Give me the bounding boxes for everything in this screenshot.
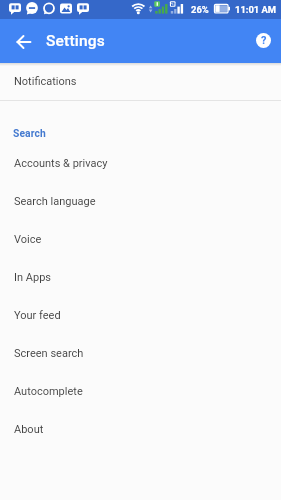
staticText: In Apps <box>14 271 52 284</box>
button[interactable]: Screen search <box>0 334 281 372</box>
button[interactable]: Notifications <box>0 63 281 100</box>
button[interactable]: In Apps <box>0 258 281 296</box>
staticText: Notifications <box>14 75 77 88</box>
staticText: 11:01 AM <box>235 4 277 15</box>
staticText: Your feed <box>14 309 61 322</box>
staticText: Autocomplete <box>14 385 83 398</box>
staticText: Settings <box>46 32 105 50</box>
button[interactable] <box>11 29 36 54</box>
button[interactable]: Voice <box>0 220 281 258</box>
staticText: 26% <box>191 4 209 15</box>
staticText: Search language <box>14 195 96 208</box>
button[interactable]: About <box>0 410 281 448</box>
button[interactable]: Accounts & privacy <box>0 144 281 182</box>
button[interactable]: ? <box>256 33 271 48</box>
staticText: Voice <box>14 233 42 246</box>
staticText: Screen search <box>14 347 84 360</box>
staticText: Search <box>13 127 46 139</box>
staticText: About <box>14 423 44 436</box>
button[interactable]: Autocomplete <box>0 372 281 410</box>
button[interactable]: Your feed <box>0 296 281 334</box>
staticText: ? <box>261 34 267 47</box>
staticText: Accounts & privacy <box>14 157 108 170</box>
button[interactable]: Search language <box>0 182 281 220</box>
